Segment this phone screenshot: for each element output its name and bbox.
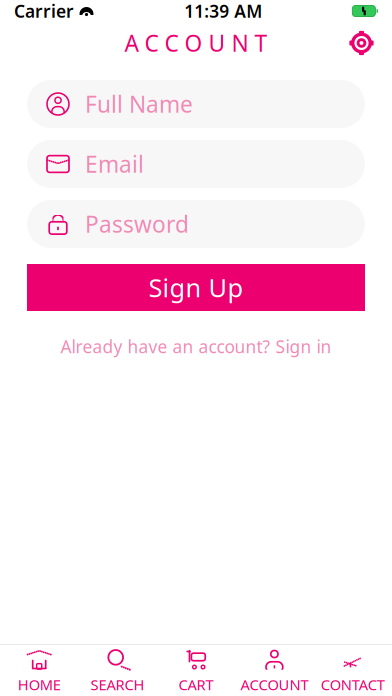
button[interactable]: Full Name bbox=[27, 80, 365, 128]
button[interactable]: Settings bbox=[337, 22, 386, 63]
staticText: Sign Up bbox=[148, 271, 243, 304]
staticText: HOME bbox=[18, 675, 61, 694]
staticText: SEARCH bbox=[91, 675, 145, 694]
button[interactable]: Email bbox=[27, 140, 365, 188]
button[interactable]: ACCOUNT bbox=[235, 641, 314, 696]
staticText: Full Name bbox=[85, 89, 193, 119]
button[interactable]: CONTACT bbox=[314, 641, 392, 696]
staticText: Email bbox=[85, 149, 144, 179]
button[interactable]: CART bbox=[157, 641, 235, 696]
staticText: CONTACT bbox=[321, 675, 385, 694]
button[interactable]: SEARCH bbox=[78, 641, 157, 696]
button[interactable]: Password bbox=[27, 200, 365, 248]
button[interactable]: Sign Up bbox=[27, 264, 365, 311]
button[interactable]: Already have an account? Sign in bbox=[50, 327, 341, 366]
staticText: ACCOUNT bbox=[240, 675, 308, 694]
staticText: Carrier bbox=[14, 0, 74, 22]
staticText: 11:39 AM bbox=[184, 0, 262, 22]
staticText: Password bbox=[85, 209, 189, 239]
staticText: CART bbox=[178, 675, 213, 694]
staticText: Already have an account? Sign in bbox=[60, 335, 331, 358]
button[interactable]: HOME bbox=[0, 641, 78, 696]
staticText: A C C O U N T bbox=[124, 28, 267, 58]
